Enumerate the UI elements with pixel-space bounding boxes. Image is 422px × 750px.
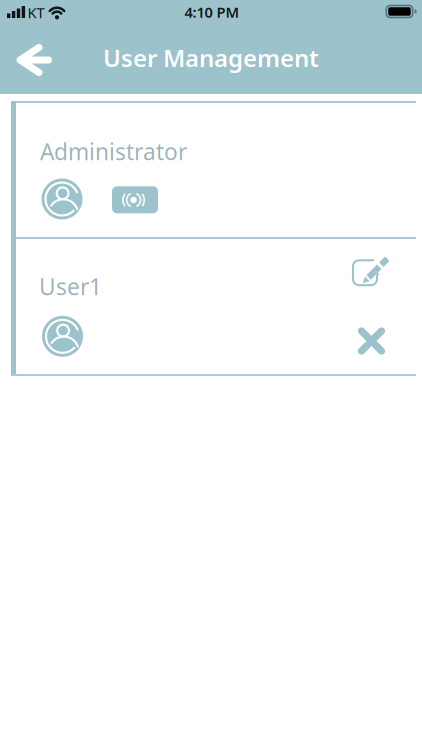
button[interactable]: Remote signal	[112, 186, 158, 213]
staticText: User Management	[103, 42, 319, 74]
button[interactable]: Delete user	[349, 319, 393, 363]
staticText: KT	[27, 3, 44, 22]
staticText: Administrator	[40, 136, 187, 166]
button[interactable]: Back	[11, 38, 55, 82]
button[interactable]: Edit user	[346, 251, 390, 295]
staticText: 4:10 PM	[184, 2, 239, 22]
staticText: User1	[39, 271, 102, 301]
